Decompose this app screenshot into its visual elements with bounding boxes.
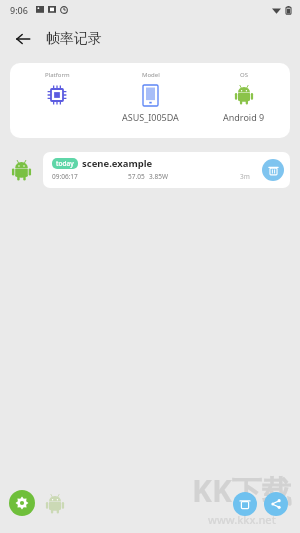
button[interactable]: Back bbox=[8, 24, 38, 54]
staticText: Model bbox=[142, 71, 160, 79]
button[interactable]: today bbox=[43, 152, 290, 188]
staticText: Android 9 bbox=[223, 111, 265, 123]
staticText: 3m bbox=[240, 172, 250, 181]
staticText: Platform bbox=[45, 71, 70, 79]
staticText: 3.85W bbox=[149, 172, 168, 181]
staticText: scene.example bbox=[82, 157, 153, 170]
staticText: www.kkx.net bbox=[208, 512, 276, 527]
button[interactable]: Settings bbox=[9, 490, 35, 516]
staticText: ASUS_I005DA bbox=[122, 111, 179, 123]
staticText: OS bbox=[240, 71, 248, 79]
staticText: KK下载 bbox=[192, 470, 292, 511]
staticText: 帧率记录 bbox=[46, 30, 102, 48]
button[interactable]: Apps bbox=[44, 493, 66, 515]
staticText: today bbox=[56, 159, 74, 168]
staticText: 9:06 bbox=[10, 4, 28, 16]
staticText: 57.05 bbox=[128, 172, 145, 181]
staticText: 09:06:17 bbox=[52, 172, 78, 181]
button[interactable]: Share bbox=[264, 492, 288, 516]
button[interactable]: Delete bbox=[262, 159, 284, 181]
button[interactable]: Delete all bbox=[233, 492, 257, 516]
